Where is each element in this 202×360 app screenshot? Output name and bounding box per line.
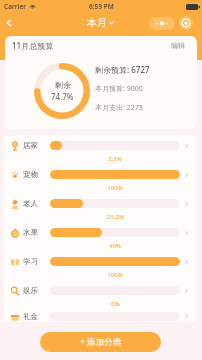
button[interactable]: + 添加分类 (40, 332, 161, 352)
button[interactable]: 娱乐 (4, 281, 196, 310)
staticText: 编辑 (171, 41, 185, 50)
staticText: 剩余 (55, 80, 71, 90)
button[interactable]: 礼金 (4, 310, 196, 322)
staticText: 剩余预算: 6727 (95, 64, 150, 75)
button[interactable]: 宠物 (4, 165, 196, 194)
staticText: 老人 (23, 199, 38, 208)
button[interactable]: 学习 (4, 252, 196, 281)
button[interactable]: 居家 (4, 136, 196, 165)
staticText: 100% (107, 184, 123, 192)
staticText: 本月支出: 2273 (95, 103, 143, 113)
staticText: 25.2% (107, 213, 124, 221)
button[interactable]: Record (179, 16, 193, 30)
staticText: 本月预算: 9000 (95, 84, 143, 94)
button[interactable]: More options (149, 17, 175, 30)
button[interactable]: 本月 (87, 16, 115, 29)
staticText: Carrier (4, 2, 27, 11)
staticText: 居家 (23, 141, 38, 150)
staticText: 2.3% (108, 155, 122, 163)
staticText: 宠物 (23, 170, 38, 179)
staticText: + 添加分类 (80, 336, 122, 348)
staticText: 娱乐 (23, 286, 38, 295)
button[interactable]: 编辑 (171, 41, 185, 50)
staticText: 学习 (23, 257, 38, 266)
button[interactable]: Back (0, 13, 18, 32)
staticText: 11月总预算 (12, 40, 54, 51)
staticText: 6:59 PM (89, 2, 114, 11)
staticText: 礼金 (23, 312, 38, 321)
staticText: 水果 (23, 228, 38, 237)
staticText: 100% (107, 271, 123, 279)
staticText: 0% (111, 300, 120, 308)
staticText: 本月 (87, 16, 107, 29)
staticText: 74.7% (51, 91, 74, 102)
button[interactable]: 水果 (4, 223, 196, 252)
button[interactable]: 老人 (4, 194, 196, 223)
staticText: 40% (109, 242, 121, 250)
